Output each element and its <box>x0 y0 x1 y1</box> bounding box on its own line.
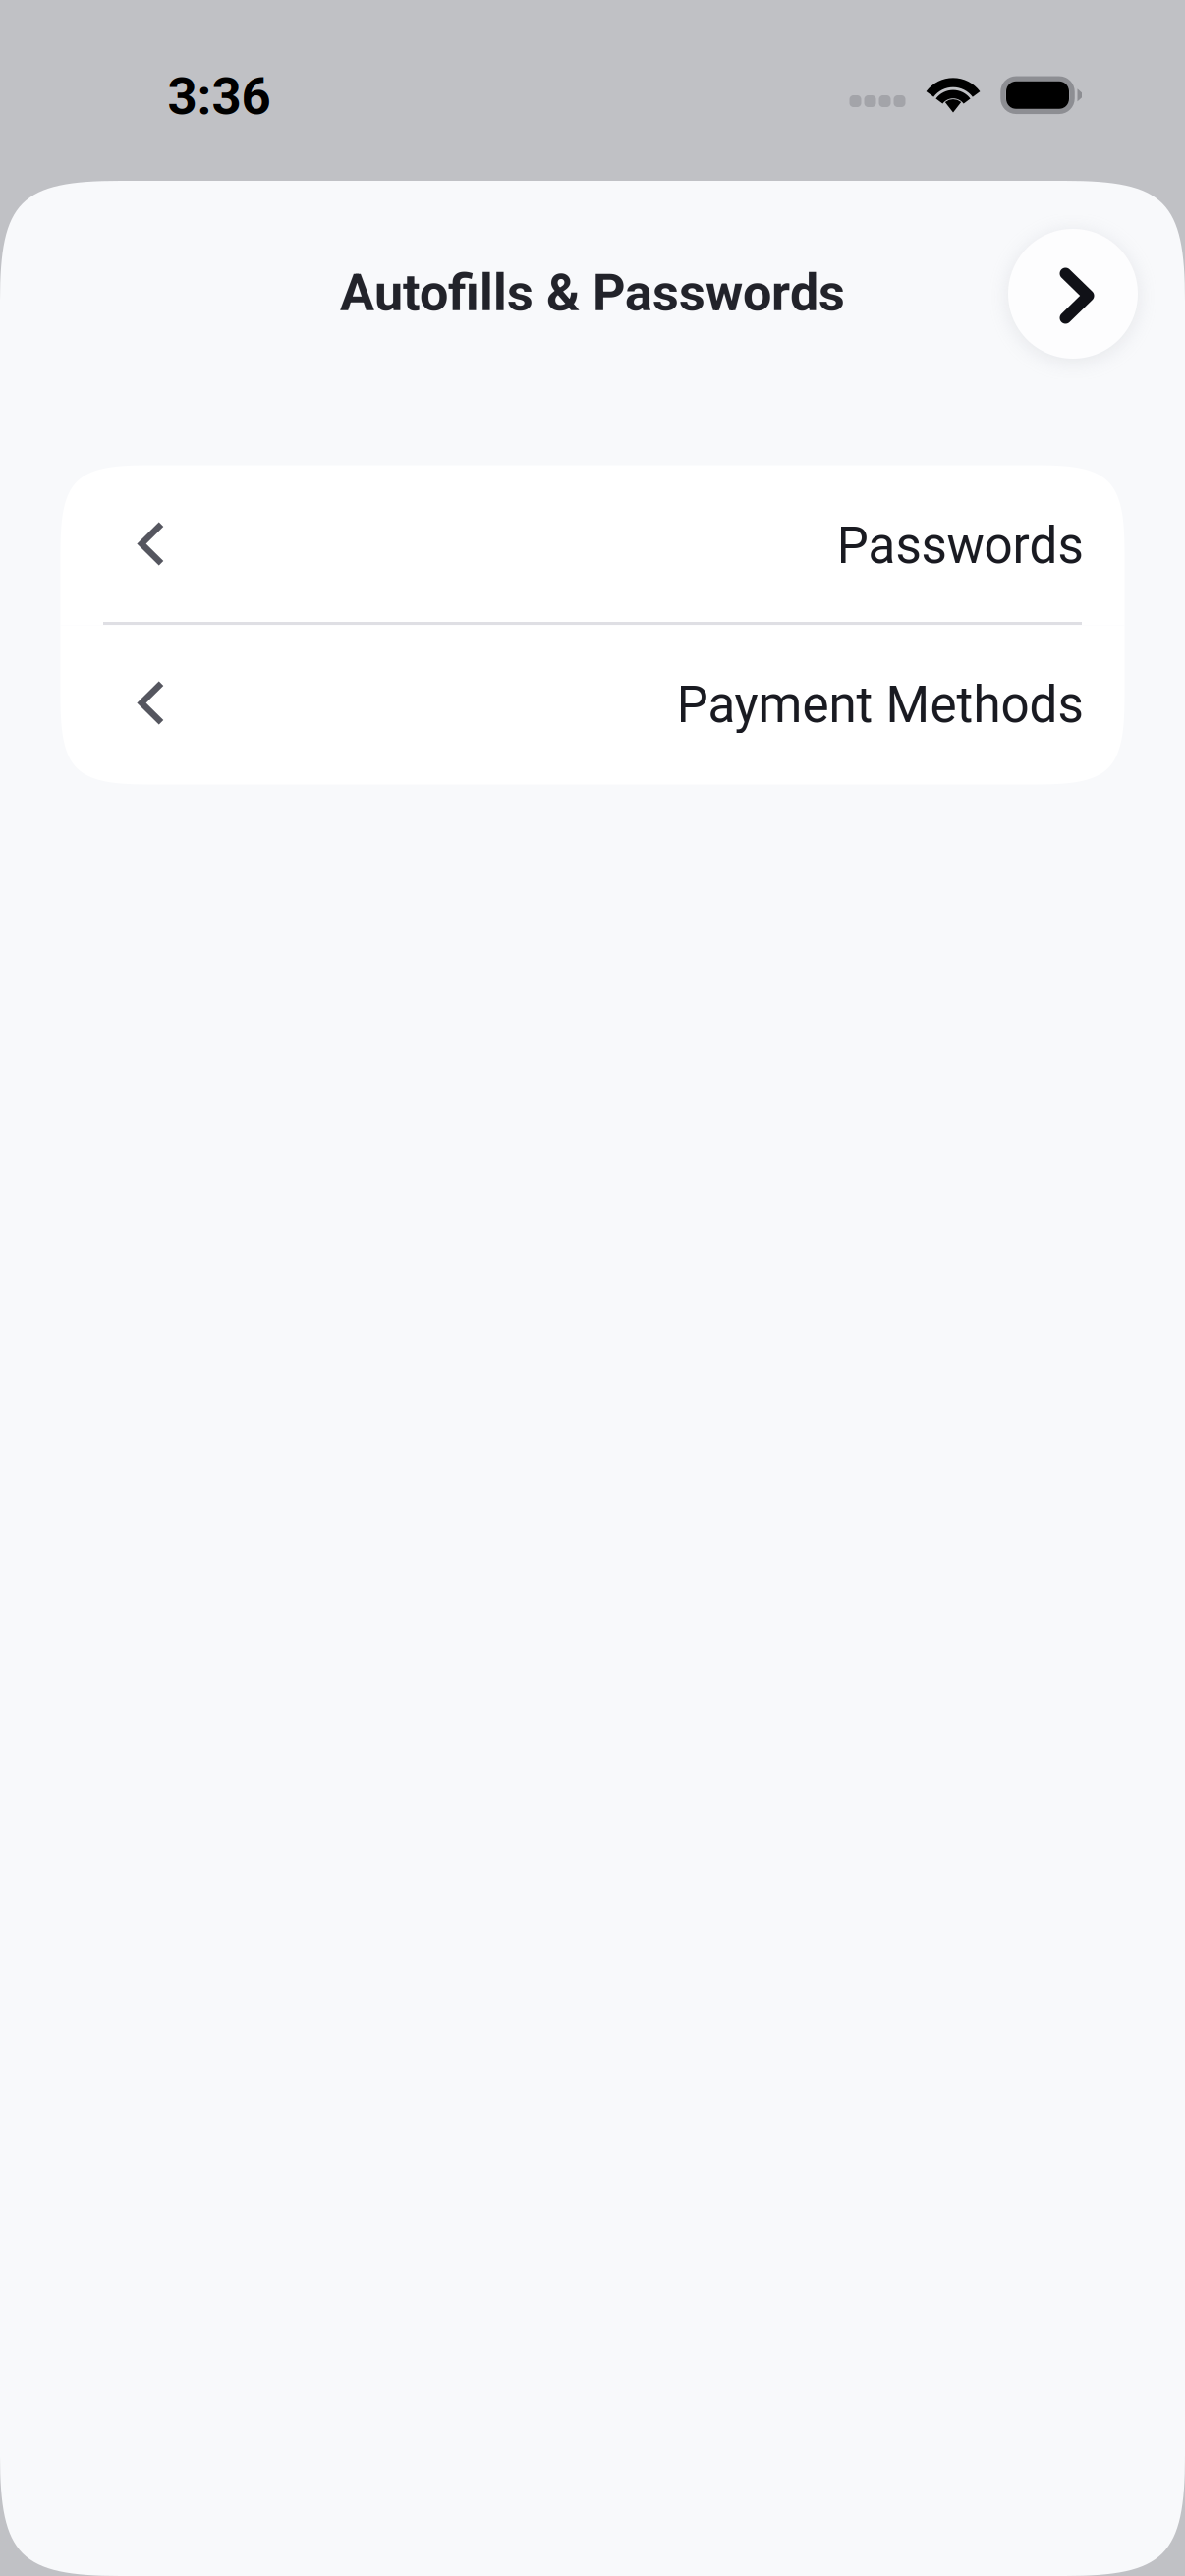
staticText: 3:36 <box>168 66 271 127</box>
button[interactable]: Payment Methods <box>60 625 1125 784</box>
staticText: Payment Methods <box>677 676 1083 734</box>
button[interactable]: Passwords <box>60 465 1125 625</box>
staticText: Passwords <box>837 516 1083 575</box>
button[interactable]: Close <box>1008 229 1138 359</box>
staticText: Autofills & Passwords <box>340 263 845 323</box>
